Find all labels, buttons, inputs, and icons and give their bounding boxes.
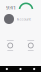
button[interactable]: Search	[14, 66, 27, 72]
button[interactable]	[20, 40, 41, 51]
staticText: 9:41	[6, 4, 16, 11]
button[interactable]: Profile	[27, 66, 41, 72]
staticText: Account	[16, 16, 30, 22]
button[interactable]	[0, 40, 20, 51]
button[interactable]: Home	[0, 66, 14, 72]
